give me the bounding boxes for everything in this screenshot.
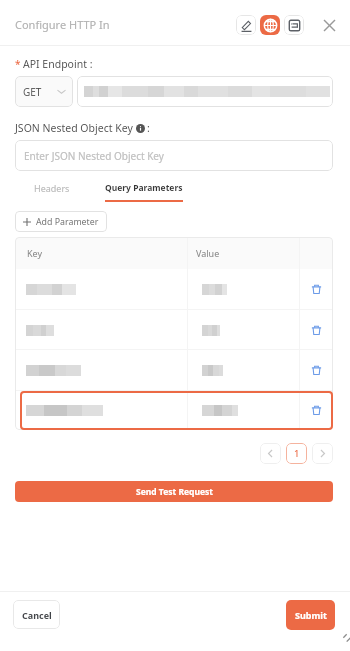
button[interactable]: Delete	[300, 310, 333, 350]
button[interactable]: Previous page	[260, 443, 281, 464]
staticText: Query Parameters	[105, 182, 183, 194]
button[interactable]: Enter JSON Nested Object Key	[15, 140, 333, 171]
staticText: 1	[294, 447, 300, 460]
staticText: Submit	[295, 609, 327, 621]
staticText: :	[147, 121, 150, 135]
button[interactable]: Submit	[286, 600, 335, 630]
staticText: Headers	[34, 182, 70, 194]
button[interactable]	[77, 76, 333, 107]
staticText: Value	[196, 247, 220, 259]
button[interactable]: Delete	[300, 350, 333, 391]
staticText: Key	[27, 247, 43, 259]
staticText: Cancel	[22, 609, 52, 621]
button[interactable]: Sync	[284, 15, 304, 35]
button[interactable]: Delete	[300, 269, 333, 310]
staticText: *	[15, 57, 21, 71]
button[interactable]: Delete	[300, 391, 333, 430]
staticText: Configure HTTP In	[15, 17, 110, 32]
staticText: Send Test Request	[136, 486, 213, 498]
staticText: Add Parameter	[36, 216, 99, 228]
button[interactable]: Add Parameter	[15, 211, 107, 232]
staticText: Enter JSON Nested Object Key	[24, 149, 164, 163]
button[interactable]: Send Test Request	[15, 481, 333, 502]
button[interactable]: Delete	[15, 269, 333, 310]
button[interactable]: Cancel	[13, 600, 60, 629]
button[interactable]: Edit	[236, 15, 256, 35]
button[interactable]: Close	[319, 15, 339, 35]
button[interactable]: Headers	[15, 177, 105, 199]
button[interactable]: Delete	[15, 310, 333, 350]
staticText: GET	[23, 85, 42, 99]
button[interactable]: GET	[15, 76, 73, 107]
button[interactable]: Query Parameters	[105, 177, 183, 202]
button[interactable]: Delete	[15, 391, 333, 430]
staticText: JSON Nested Object Key	[15, 121, 133, 135]
button[interactable]: Globe	[260, 15, 280, 35]
button[interactable]: Page 1	[286, 443, 307, 464]
staticText: API Endpoint :	[23, 57, 93, 71]
button[interactable]: Next page	[312, 443, 333, 464]
button[interactable]: Delete	[15, 350, 333, 391]
